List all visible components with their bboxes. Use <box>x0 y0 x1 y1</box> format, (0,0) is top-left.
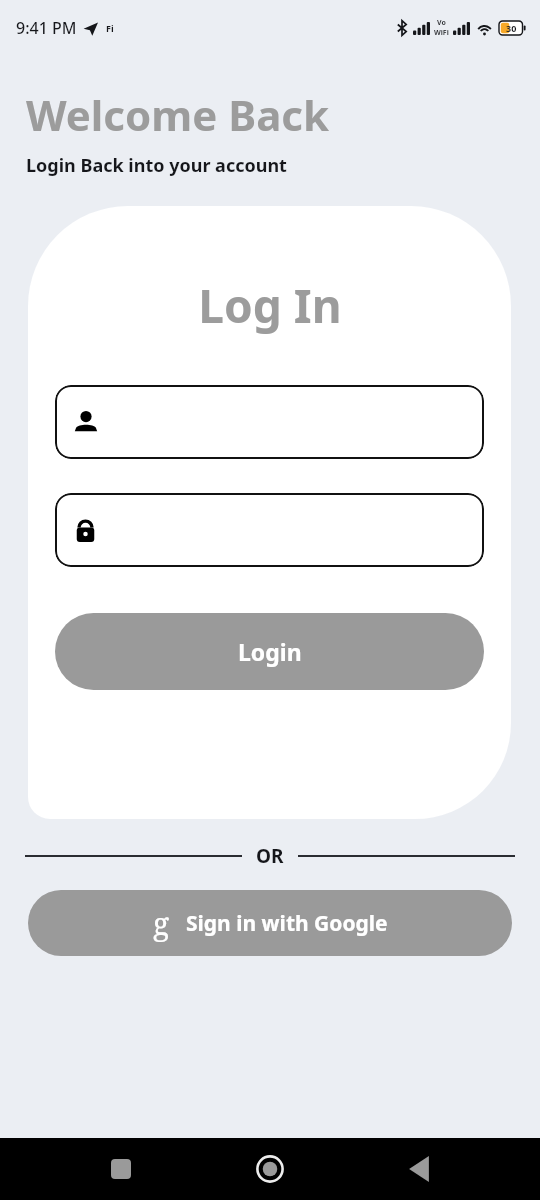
button[interactable]: Recents <box>93 1141 149 1197</box>
button[interactable]: Home <box>242 1141 298 1197</box>
staticText: g <box>153 903 170 944</box>
staticText: Fi <box>106 22 114 34</box>
staticText: Login Back into your account <box>26 153 287 178</box>
staticText: Login <box>238 636 302 667</box>
staticText: OR <box>256 843 284 869</box>
button[interactable]: Username field <box>55 385 484 459</box>
staticText: 30 <box>506 22 517 34</box>
button[interactable]: g <box>28 890 512 956</box>
staticText: Sign in with Google <box>186 909 388 938</box>
staticText: Welcome Back <box>26 86 330 143</box>
button[interactable]: Back <box>391 1141 447 1197</box>
staticText: 9:41 PM <box>16 17 77 39</box>
button[interactable]: Login <box>55 613 484 690</box>
button[interactable]: Password field <box>55 493 484 567</box>
staticText: Vo <box>437 18 446 28</box>
staticText: Log In <box>198 274 342 337</box>
staticText: WiFi <box>434 28 449 38</box>
